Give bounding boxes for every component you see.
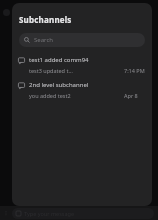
other: Subchannel [18,82,25,89]
staticText: Type your message [24,210,74,217]
staticText: test3 updated the thread's typ... [29,67,75,74]
staticText: 7:14 PM [124,67,145,74]
staticText: Search [34,36,53,44]
button[interactable]: Subchannel [12,54,152,76]
staticText: 2nd level subchannel [29,81,89,89]
staticText: you added test2 [29,92,71,99]
button[interactable]: Search [19,33,145,47]
staticText: Subchannels [19,14,72,25]
staticText: test1 added comm94 [29,56,89,64]
button[interactable]: Subchannel [12,79,152,101]
other: Subchannel [18,57,25,64]
staticText: Apr 8 [124,92,138,99]
